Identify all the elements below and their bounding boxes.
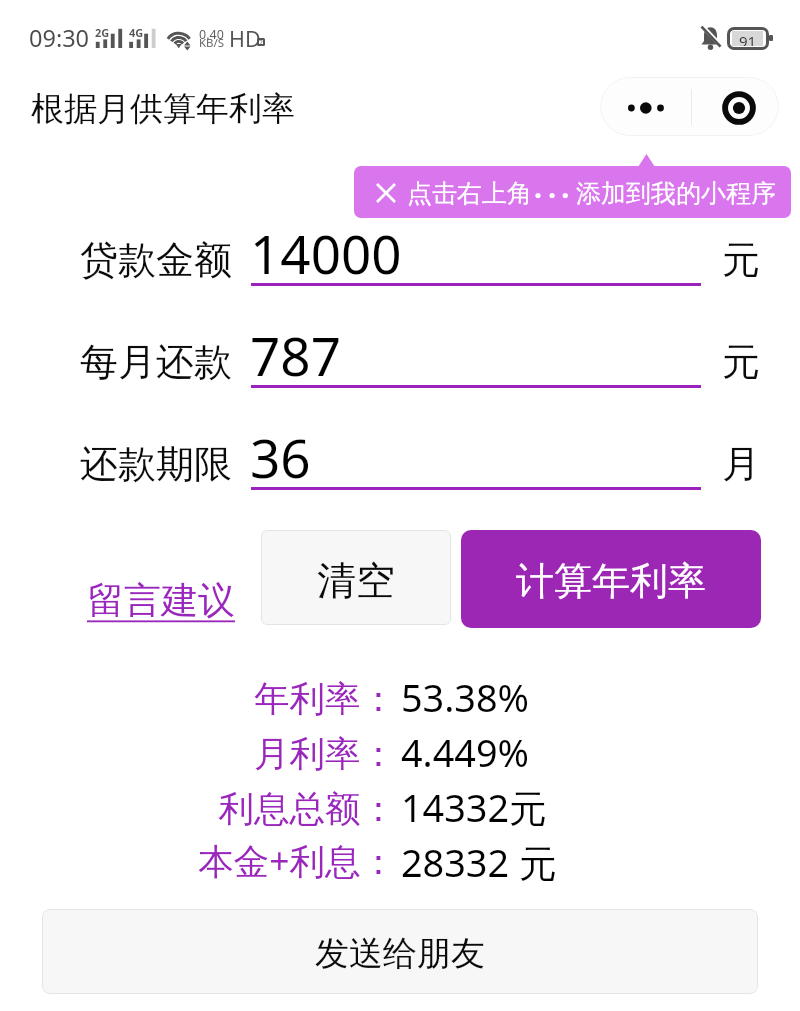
staticText: 年利率：	[254, 677, 396, 722]
staticText: 53.38%	[401, 672, 530, 723]
button[interactable]: More options	[600, 77, 691, 136]
button[interactable]: 发送给朋友	[42, 909, 758, 994]
staticText: 本金+利息：	[198, 836, 396, 884]
staticText: 每月还款	[80, 338, 232, 386]
staticText: 4G	[129, 25, 144, 40]
staticText: 月利率：	[254, 732, 396, 777]
staticText: 28332 元	[401, 837, 557, 889]
staticText: 91	[739, 31, 757, 46]
staticText: 贷款金额	[80, 236, 232, 284]
staticText: 清空	[317, 556, 395, 605]
staticText: 元	[722, 338, 760, 386]
staticText: 点击右上角	[407, 178, 532, 209]
other: Silent mode	[700, 24, 724, 52]
button[interactable]: 计算年利率	[461, 530, 761, 628]
staticText: 36	[250, 421, 311, 493]
staticText: 计算年利率	[516, 557, 706, 605]
staticText: 月	[722, 440, 760, 488]
staticText: 0.40	[199, 26, 224, 43]
staticText: 787	[250, 319, 341, 391]
staticText: 4.449%	[401, 727, 530, 778]
staticText: 14332元	[401, 782, 547, 834]
staticText: 根据月供算年利率	[31, 88, 295, 130]
staticText: 09:30	[29, 22, 90, 54]
staticText: 还款期限	[80, 440, 232, 488]
staticText: 2G	[95, 25, 110, 40]
staticText: 元	[722, 236, 760, 284]
staticText: HD	[229, 24, 261, 53]
button[interactable]: 留言建议	[87, 577, 235, 624]
staticText: 14000	[250, 217, 402, 289]
staticText: KB/S	[199, 35, 225, 51]
button[interactable]: Close mini program	[692, 77, 779, 136]
staticText: 发送给朋友	[315, 932, 485, 975]
staticText: 利息总额：	[218, 787, 396, 832]
staticText: 留言建议	[87, 577, 235, 624]
button[interactable]: 清空	[261, 530, 451, 625]
button[interactable]: 点击右上角	[354, 166, 791, 218]
staticText: 2	[259, 38, 264, 46]
staticText: 添加到我的小程序	[576, 178, 776, 209]
